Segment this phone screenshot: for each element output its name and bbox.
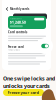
button[interactable]: Freeze card <box>41 44 49 48</box>
staticText: Freeze your card <box>7 90 39 95</box>
staticText: Temporarily lock <box>8 49 20 51</box>
staticText: $1,248.50 <box>10 20 26 25</box>
staticText: Monthly cards <box>10 7 29 11</box>
staticText: Available balance <box>10 18 22 20</box>
button[interactable]: Back <box>5 6 9 12</box>
staticText: unlocks your cards <box>3 82 50 90</box>
staticText: One swipe locks and <box>3 75 55 82</box>
staticText: Freeze card <box>8 45 24 49</box>
button[interactable]: Freeze your card <box>3 89 44 96</box>
staticText: Card controls <box>8 30 27 34</box>
